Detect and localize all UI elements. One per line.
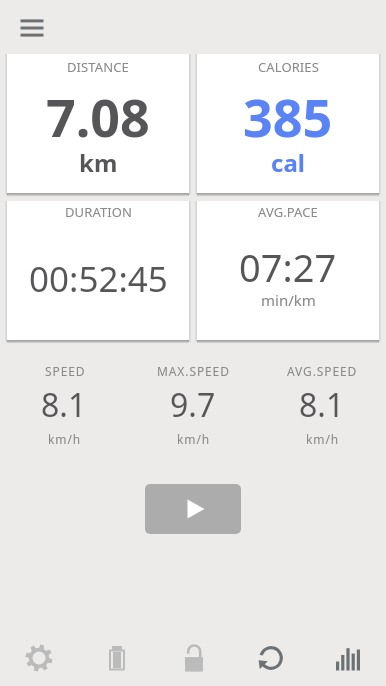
staticText: 9.7 (170, 383, 216, 427)
button[interactable]: Settings (0, 629, 78, 686)
staticText: km/h (306, 431, 340, 447)
button[interactable]: CALORIES (197, 54, 379, 193)
staticText: 8.1 (41, 383, 87, 427)
staticText: km (79, 146, 118, 179)
staticText: 8.1 (299, 383, 345, 427)
staticText: AVG.PACE (258, 203, 318, 221)
button[interactable]: Start (145, 484, 241, 534)
staticText: min/km (261, 290, 316, 310)
staticText: AVG.SPEED (287, 363, 358, 379)
button[interactable]: Statistics (309, 629, 386, 686)
button[interactable]: DISTANCE (7, 54, 189, 193)
staticText: SPEED (45, 363, 86, 379)
staticText: DISTANCE (67, 58, 129, 76)
button[interactable]: Refresh (232, 629, 309, 686)
staticText: 385 (243, 81, 333, 152)
staticText: cal (271, 146, 305, 179)
staticText: km/h (48, 431, 82, 447)
button[interactable]: DURATION (7, 201, 189, 340)
button[interactable]: AVG.SPEED (257, 359, 386, 449)
button[interactable]: Battery (78, 629, 155, 686)
staticText: CALORIES (258, 58, 319, 76)
staticText: 7.08 (46, 81, 150, 152)
button[interactable]: SPEED (0, 359, 128, 449)
staticText: MAX.SPEED (157, 363, 230, 379)
staticText: DURATION (65, 203, 132, 221)
button[interactable]: Menu (11, 7, 51, 47)
staticText: 00:52:45 (29, 255, 168, 303)
button[interactable]: MAX.SPEED (128, 359, 257, 449)
button[interactable]: AVG.PACE (197, 201, 379, 340)
staticText: 07:27 (239, 241, 337, 293)
staticText: km/h (177, 431, 211, 447)
button[interactable]: Lock (155, 629, 232, 686)
